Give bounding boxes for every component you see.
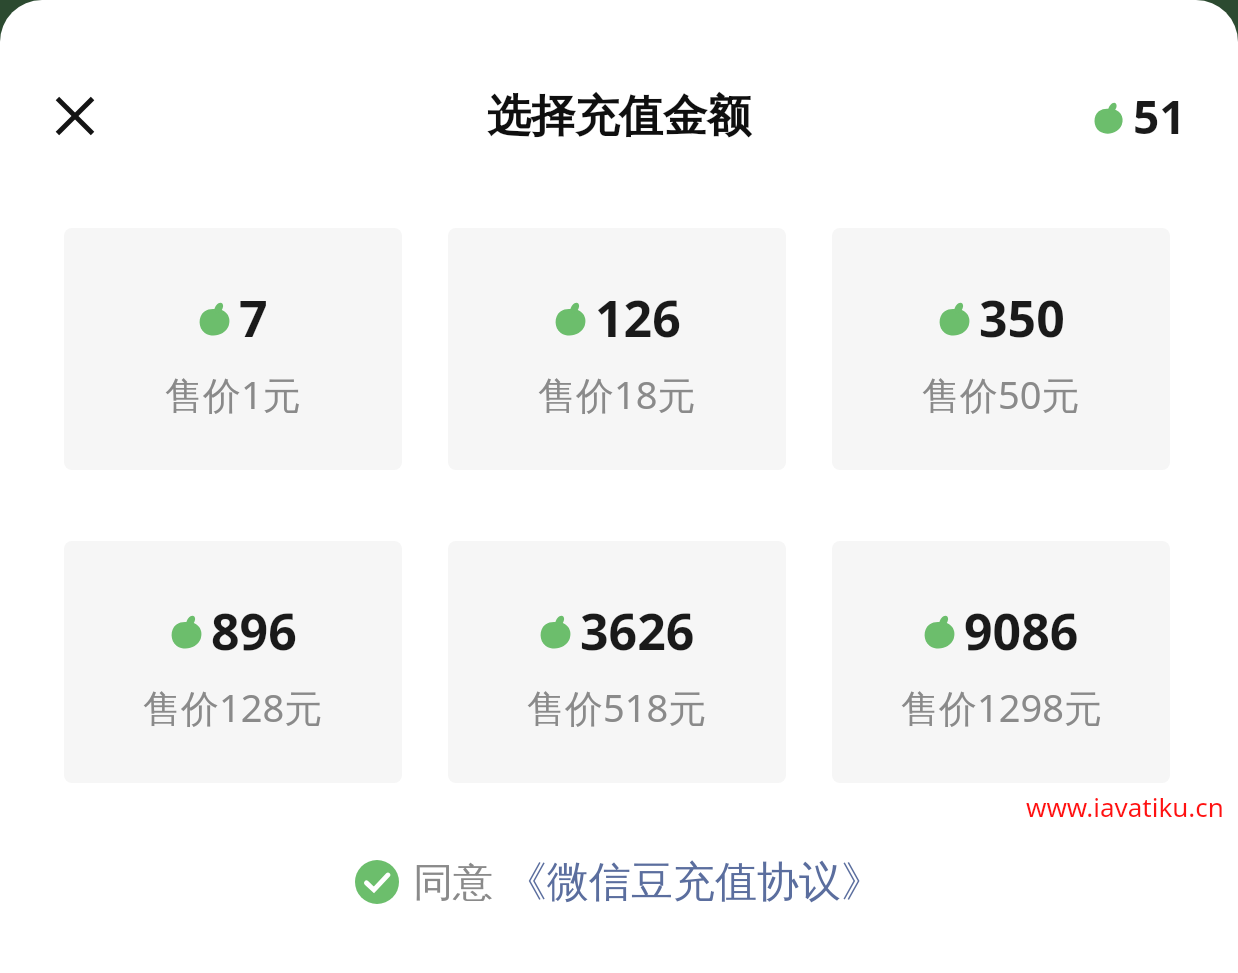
button[interactable]: 9086 [832,541,1170,783]
staticText: 售价1元 [165,368,301,420]
button[interactable]: 350 [832,228,1170,470]
button[interactable]: 7 [64,228,402,470]
staticText: 350 [979,284,1065,352]
button[interactable]: 同意 [0,817,1238,947]
button[interactable]: Close [44,85,106,147]
staticText: 7 [239,284,268,352]
button[interactable]: 51 [1093,85,1186,148]
staticText: 51 [1133,85,1186,148]
staticText: 126 [595,284,681,352]
staticText: 896 [211,597,297,665]
staticText: www.javatiku.cn [1026,789,1224,817]
staticText: 售价1298元 [901,681,1102,733]
staticText: 售价18元 [538,368,696,420]
staticText: 3626 [580,597,695,665]
button[interactable]: 896 [64,541,402,783]
staticText: 《微信豆充值协议》 [505,856,883,909]
staticText: 售价518元 [527,681,707,733]
button[interactable]: 3626 [448,541,786,783]
staticText: 同意 [413,857,493,907]
staticText: 9086 [964,597,1079,665]
button[interactable]: 126 [448,228,786,470]
staticText: 售价50元 [922,368,1080,420]
staticText: 售价128元 [143,681,323,733]
staticText: 选择充值金额 [487,89,751,144]
